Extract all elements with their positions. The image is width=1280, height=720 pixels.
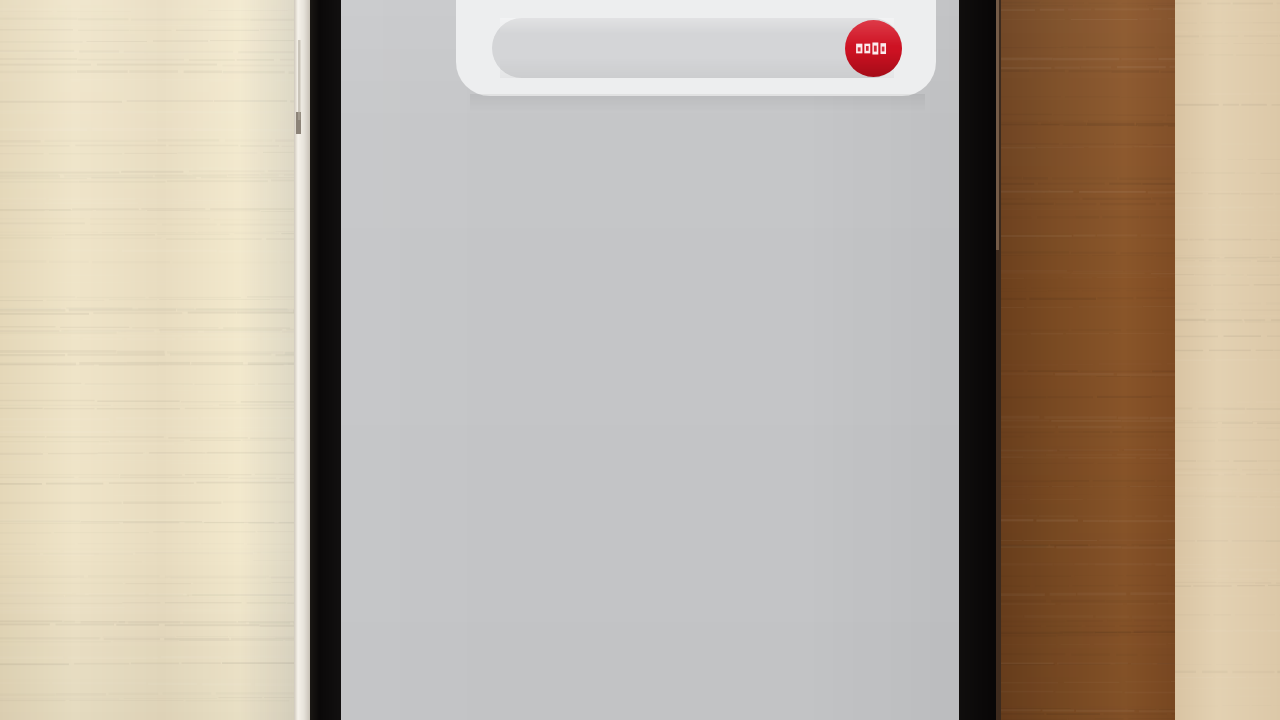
button[interactable]	[456, 0, 936, 96]
button[interactable]: Search	[492, 18, 902, 78]
button[interactable]: Record voice search	[845, 20, 902, 77]
